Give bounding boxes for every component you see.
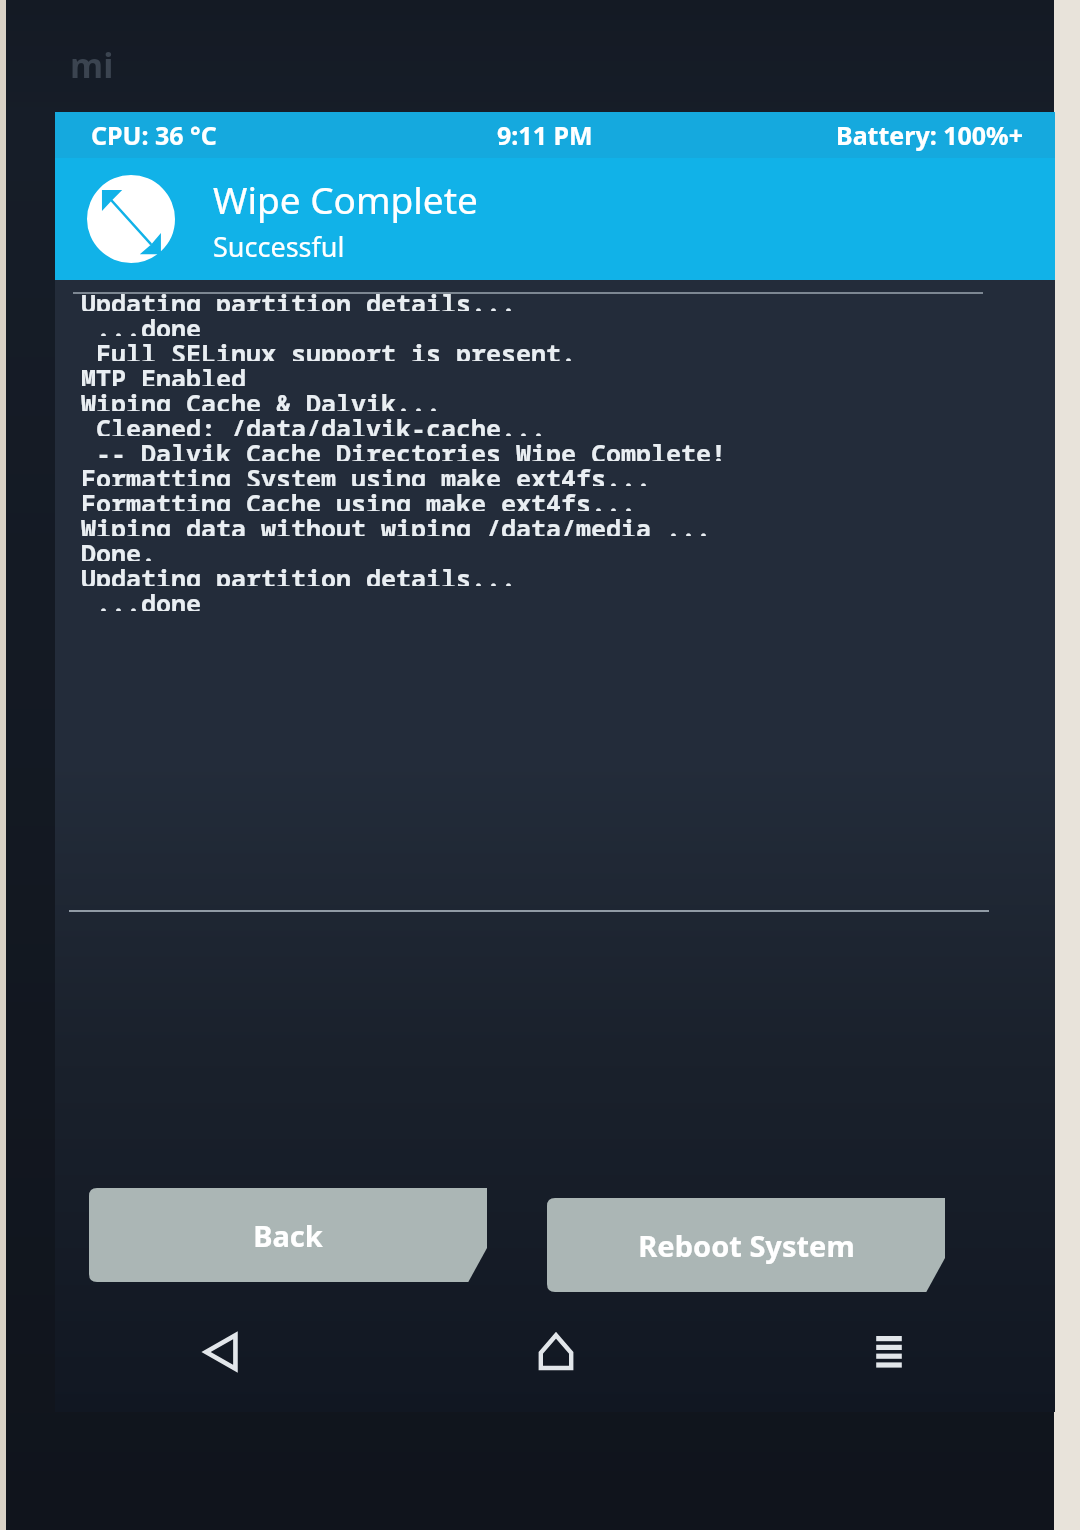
staticText: CPU: 36 °C (91, 118, 217, 152)
staticText: MTP Enabled (81, 361, 247, 386)
button[interactable]: Home (389, 1292, 722, 1412)
staticText: Battery: 100%+ (836, 118, 1023, 152)
staticText: Cleaned: /data/dalvik-cache... (81, 411, 547, 436)
staticText: ...done (81, 586, 202, 611)
staticText: Formatting System using make_ext4fs... (81, 461, 652, 486)
staticText: 9:11 PM (497, 118, 593, 152)
button[interactable]: Back (55, 1292, 389, 1412)
button[interactable]: Menu (722, 1292, 1055, 1412)
staticText: Done. (81, 536, 157, 561)
button[interactable]: Back (89, 1188, 487, 1282)
button[interactable]: Reboot System (547, 1198, 945, 1292)
staticText: Updating partition details... (81, 561, 517, 586)
staticText: Updating partition details... (81, 286, 517, 311)
staticText: Wipe Complete (213, 174, 478, 224)
staticText: Successful (213, 228, 345, 265)
staticText: mi (70, 42, 114, 88)
staticText: Reboot System (638, 1226, 855, 1265)
staticText: Formatting Cache using make_ext4fs... (81, 486, 637, 511)
staticText: Back (253, 1216, 323, 1255)
staticText: Full SELinux support is present. (81, 336, 577, 361)
staticText: -- Dalvik Cache Directories Wipe Complet… (81, 436, 727, 461)
staticText: Wiping Cache & Dalvik... (81, 386, 442, 411)
staticText: Wiping data without wiping /data/media .… (81, 511, 712, 536)
staticText: ...done (81, 311, 202, 336)
